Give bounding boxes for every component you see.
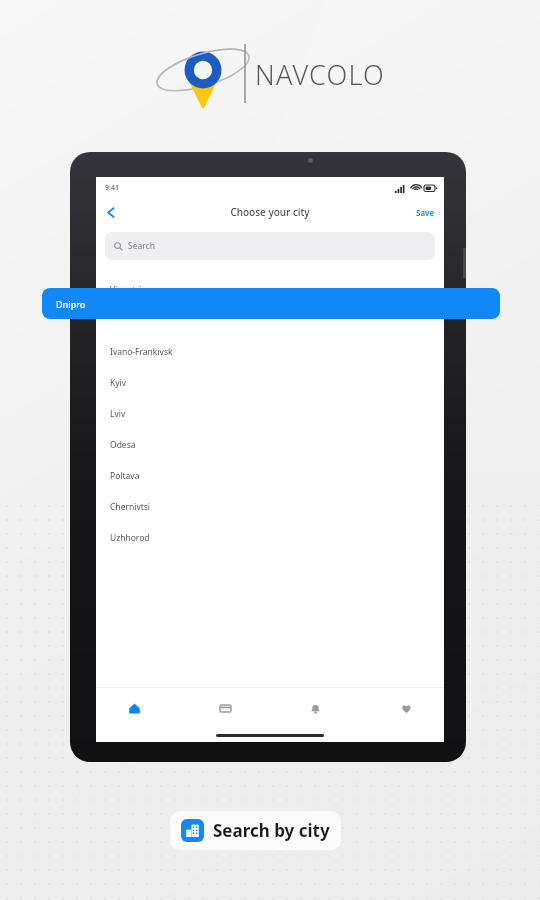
staticText: Search bbox=[128, 240, 155, 252]
button[interactable]: Back bbox=[100, 201, 122, 223]
staticText: Vinnytsia bbox=[110, 284, 147, 296]
staticText: Ivano-Frankivsk bbox=[110, 346, 173, 358]
button[interactable]: Cards bbox=[199, 691, 251, 725]
staticText: Dnipro bbox=[56, 298, 86, 310]
button[interactable]: Poltava bbox=[96, 460, 444, 491]
staticText: Lviv bbox=[110, 408, 126, 420]
staticText: NAVCOLO bbox=[255, 56, 385, 93]
button[interactable]: Notifications bbox=[289, 691, 341, 725]
staticText: Kyiv bbox=[110, 377, 127, 389]
button[interactable]: Lviv bbox=[96, 398, 444, 429]
button[interactable]: Search by city bbox=[170, 811, 341, 850]
staticText: Uzhhorod bbox=[110, 532, 150, 544]
staticText: Odesa bbox=[110, 439, 136, 451]
staticText: Choose your city bbox=[230, 205, 310, 219]
button[interactable]: Save bbox=[407, 202, 444, 223]
staticText: Save bbox=[416, 207, 435, 218]
button[interactable]: Kyiv bbox=[96, 367, 444, 398]
staticText: Chernivtsi bbox=[110, 501, 151, 513]
button[interactable]: Vinnytsia bbox=[96, 274, 444, 305]
staticText: Search by city bbox=[213, 819, 330, 842]
staticText: 9:41 bbox=[105, 183, 119, 193]
button[interactable]: Favorites bbox=[380, 691, 432, 725]
button[interactable]: Odesa bbox=[96, 429, 444, 460]
button[interactable]: Chernivtsi bbox=[96, 491, 444, 522]
button[interactable]: Ivano-Frankivsk bbox=[96, 336, 444, 367]
button[interactable]: Dnipro bbox=[42, 288, 500, 319]
button[interactable]: Home bbox=[108, 691, 160, 725]
staticText: Poltava bbox=[110, 470, 140, 482]
other: Navcolo logo bbox=[0, 0, 540, 135]
button[interactable]: Search bbox=[105, 232, 435, 260]
button[interactable]: Uzhhorod bbox=[96, 522, 444, 553]
